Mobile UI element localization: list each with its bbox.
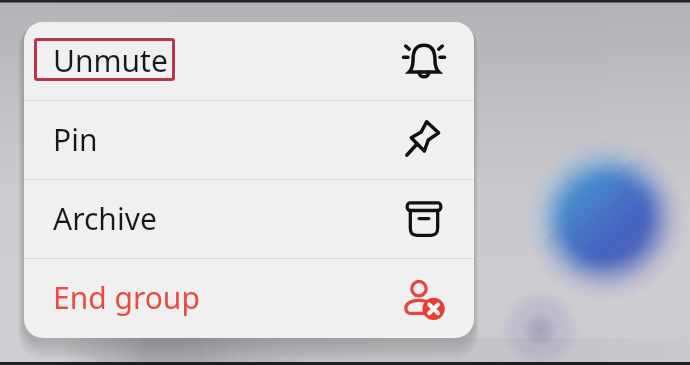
other: Archive xyxy=(400,195,448,243)
other: End group xyxy=(400,275,448,323)
button[interactable]: Pin xyxy=(24,101,474,179)
button[interactable]: End group xyxy=(24,259,474,338)
other: Unmute notifications xyxy=(400,37,448,85)
other: Pin xyxy=(400,116,448,164)
staticText: Pin xyxy=(53,119,98,160)
staticText: End group xyxy=(53,277,200,318)
staticText: Unmute xyxy=(53,40,168,81)
button[interactable]: Unmute xyxy=(24,22,474,100)
staticText: Archive xyxy=(53,198,157,239)
button[interactable]: Archive xyxy=(24,180,474,258)
